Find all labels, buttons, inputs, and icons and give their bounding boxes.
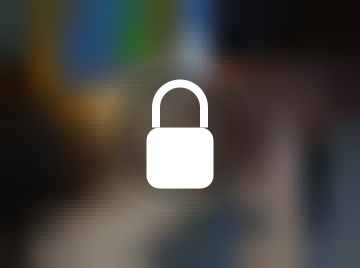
button[interactable]: Locked content (146, 79, 213, 188)
